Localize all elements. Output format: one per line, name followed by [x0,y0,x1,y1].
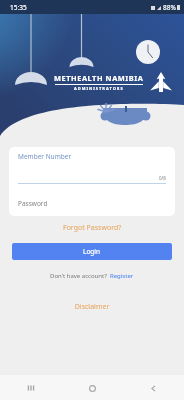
button[interactable]: Login [12,243,172,260]
staticText: ADMINISTRATORS [74,86,124,91]
staticText: Login [83,247,101,256]
button[interactable]: Register [110,272,134,280]
button[interactable]: Back [141,376,165,400]
staticText: 15:35 [10,3,27,12]
button[interactable]: Home [80,376,104,400]
staticText: Don't have account? [50,272,107,280]
button[interactable]: Disclaimer [0,302,184,312]
staticText: Password [18,199,48,208]
staticText: 0/8 [159,175,166,181]
staticText: Member Number [18,152,72,161]
staticText: METHEALTH NAMIBIA [54,73,144,83]
staticText: 88% [163,3,176,12]
button[interactable]: Forgot Password? [63,223,122,233]
button[interactable]: Recent apps [19,376,43,400]
